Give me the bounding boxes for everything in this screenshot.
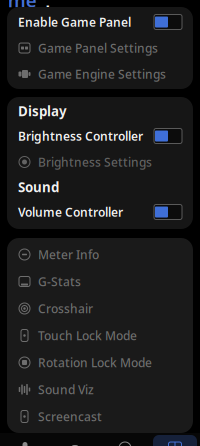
staticText: Rotation Lock Mode (38, 354, 152, 370)
button[interactable]: Crosshair (7, 295, 193, 322)
staticText: Volume Controller (18, 204, 123, 220)
button[interactable]: Game Panel Settings (7, 35, 193, 61)
button[interactable]: Meter Info (7, 241, 193, 268)
button[interactable]: Boost (0, 433, 50, 446)
staticText: Brightness Settings (38, 154, 152, 170)
button[interactable]: Volume Controller (7, 199, 193, 225)
staticText: Screencast (38, 408, 102, 424)
staticText: Crosshair (38, 300, 93, 316)
staticText: Brightness Controller (18, 128, 143, 144)
button[interactable]: G-Stats (7, 268, 193, 295)
staticText: Sound Viz (38, 381, 94, 397)
staticText: Mode (39, 0, 62, 25)
staticText: Game (8, 0, 39, 12)
button[interactable]: Brightness Controller (7, 123, 193, 149)
staticText: G-Stats (38, 273, 81, 289)
button[interactable]: Game Engine Settings (7, 61, 193, 87)
button[interactable]: Sound Viz (7, 376, 193, 403)
staticText: Game Panel Settings (38, 40, 158, 56)
button[interactable]: History (100, 433, 150, 446)
button[interactable]: Rotation Lock Mode (7, 349, 193, 376)
staticText: Game Engine Settings (38, 66, 166, 82)
button[interactable]: Tools (50, 433, 100, 446)
button[interactable]: Screencast (7, 403, 193, 430)
staticText: Meter Info (38, 246, 99, 262)
button[interactable]: Brightness Settings (7, 149, 193, 175)
button[interactable]: Touch Lock Mode (7, 322, 193, 349)
staticText: Sound (18, 178, 59, 196)
button[interactable]: Enable Game Panel (7, 9, 193, 35)
button[interactable]: Dashboard (150, 433, 200, 446)
staticText: Display (18, 102, 67, 120)
staticText: Enable Game Panel (18, 14, 131, 30)
staticText: Touch Lock Mode (38, 327, 137, 343)
